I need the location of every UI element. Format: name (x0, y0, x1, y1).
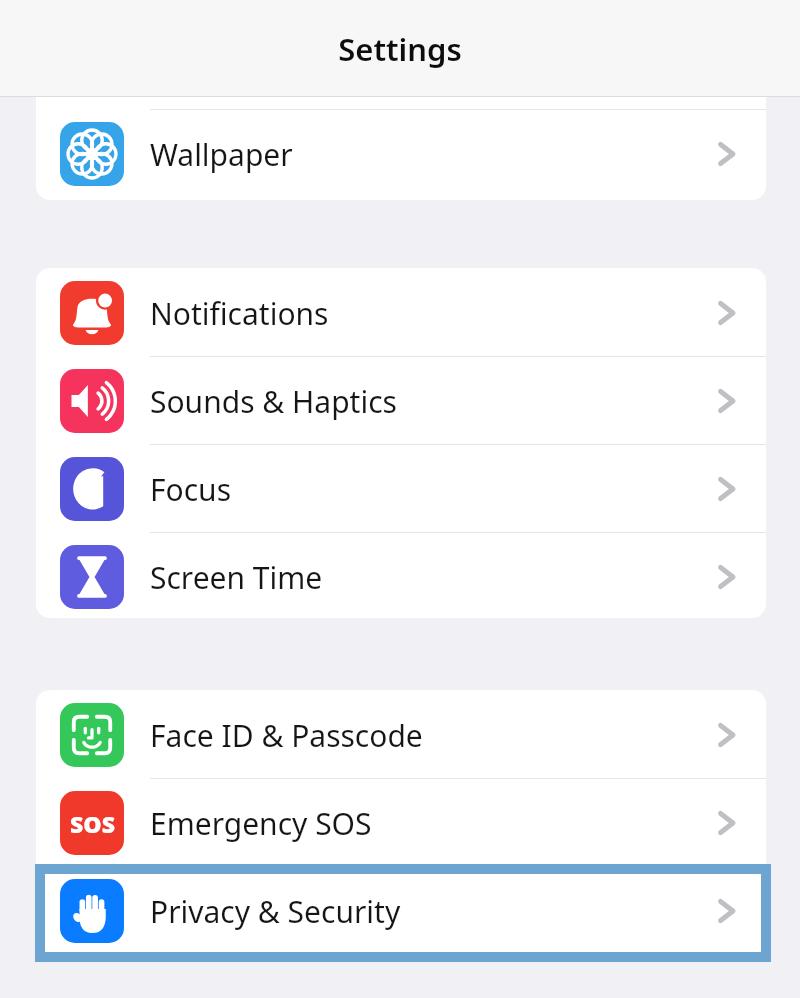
button[interactable]: Wallpaper (36, 110, 766, 198)
staticText: Focus (150, 469, 232, 510)
staticText: Privacy & Security (150, 891, 401, 932)
button[interactable]: SOS (36, 779, 766, 867)
staticText: Screen Time (150, 557, 323, 598)
staticText: Wallpaper (150, 134, 293, 175)
staticText: Notifications (150, 293, 329, 334)
button[interactable]: Privacy & Security (36, 867, 766, 955)
button[interactable]: Screen Time (36, 533, 766, 618)
other: Privacy & Security selected (0, 0, 800, 998)
button[interactable]: Sounds & Haptics (36, 357, 766, 445)
staticText: Emergency SOS (150, 803, 372, 844)
staticText: Face ID & Passcode (150, 715, 423, 756)
staticText: Sounds & Haptics (150, 381, 397, 422)
staticText: Settings (0, 28, 800, 70)
button[interactable]: Face ID & Passcode (36, 691, 766, 779)
button[interactable]: Focus (36, 445, 766, 533)
staticText: SOS (70, 808, 115, 839)
button[interactable]: Notifications (36, 269, 766, 357)
